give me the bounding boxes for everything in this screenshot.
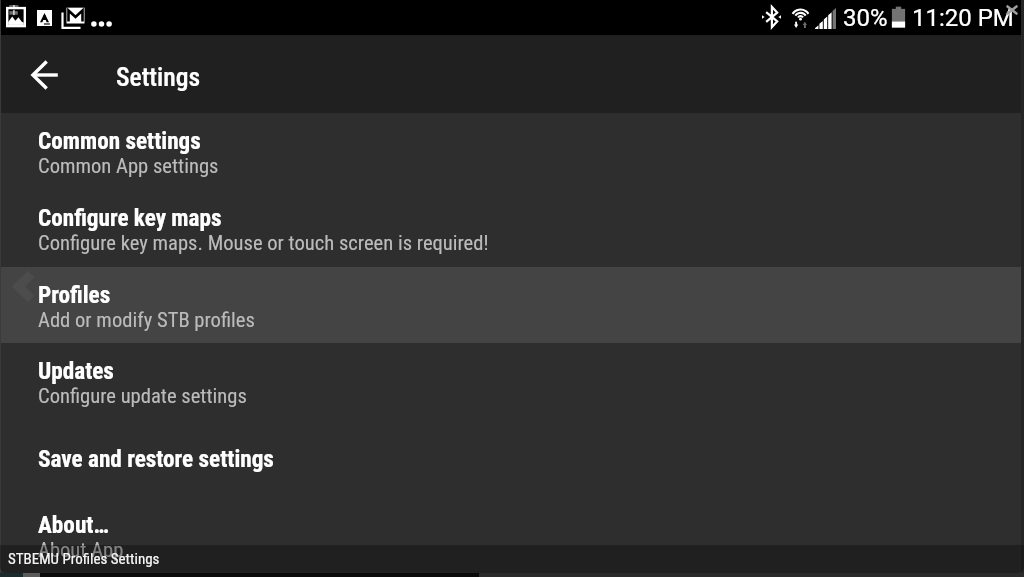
staticText: Settings [116, 62, 201, 92]
staticText: About App [38, 538, 124, 562]
button[interactable]: Profiles [0, 267, 1024, 344]
staticText: Add or modify STB profiles [38, 308, 255, 332]
staticText: Profiles [38, 281, 111, 308]
staticText: Configure update settings [38, 384, 247, 408]
button[interactable]: Common settings [0, 113, 1024, 190]
staticText: Configure key maps. Mouse or touch scree… [38, 231, 489, 255]
staticText: About… [38, 511, 109, 538]
staticText: 30% [843, 4, 888, 32]
staticText: 11:20 PM [912, 4, 1014, 32]
button[interactable]: Save and restore settings [0, 420, 1024, 497]
staticText: Configure key maps [38, 204, 222, 231]
staticText: Common App settings [38, 154, 219, 178]
button[interactable]: Navigate up [17, 47, 73, 103]
staticText: STBEMU Profiles Settings [8, 550, 160, 568]
button[interactable]: About… [0, 497, 1024, 574]
button[interactable]: Configure key maps [0, 190, 1024, 267]
staticText: Save and restore settings [38, 445, 274, 472]
button[interactable]: Updates [0, 343, 1024, 420]
staticText: Common settings [38, 127, 201, 154]
staticText: Updates [38, 357, 114, 384]
